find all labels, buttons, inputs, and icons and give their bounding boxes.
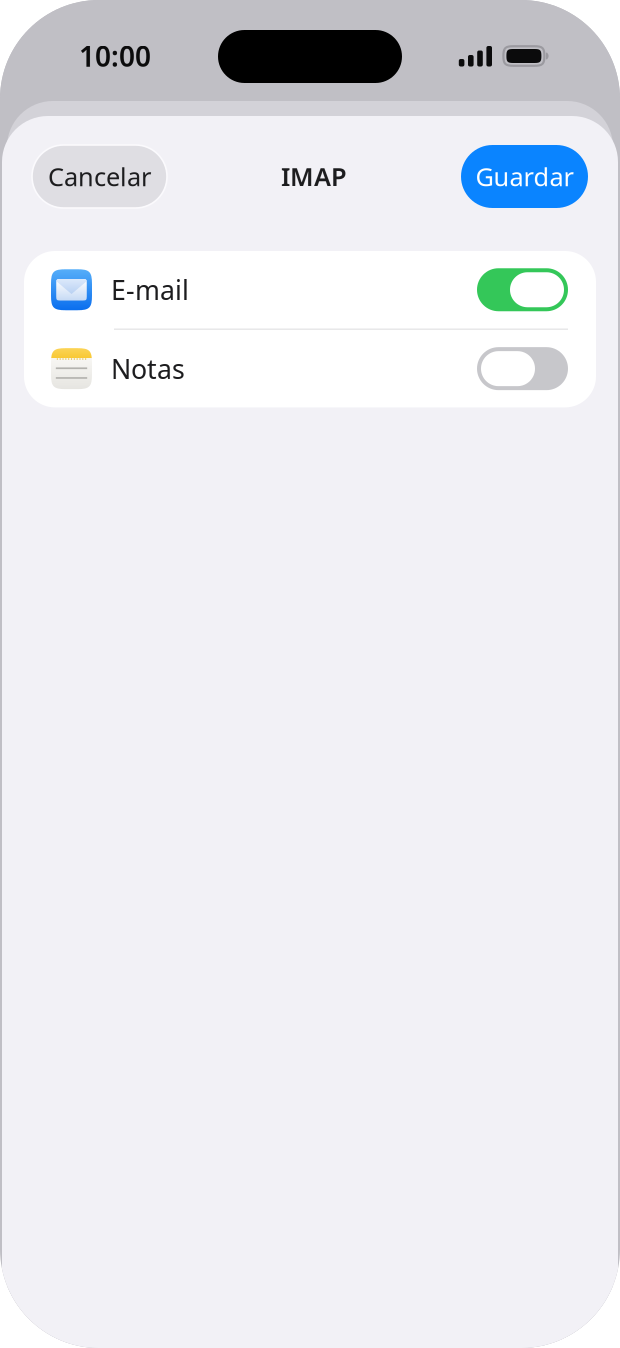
button[interactable]: E-mail xyxy=(24,251,596,328)
staticText: Notas xyxy=(111,351,185,386)
button[interactable]: Cancelar xyxy=(32,145,167,208)
button[interactable]: Notas xyxy=(24,330,596,407)
staticText: Guardar xyxy=(475,160,573,193)
staticText: 10:00 xyxy=(79,37,151,75)
button[interactable]: Guardar xyxy=(461,145,588,208)
staticText: E-mail xyxy=(111,272,189,307)
staticText: IMAP xyxy=(281,160,347,193)
staticText: Cancelar xyxy=(48,160,151,193)
